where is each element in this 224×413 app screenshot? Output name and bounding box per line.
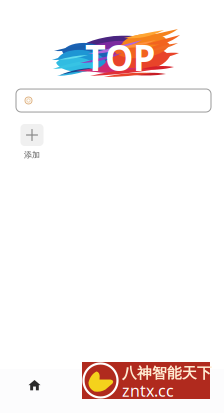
button[interactable]: Home [0, 369, 69, 413]
button[interactable] [16, 89, 211, 112]
staticText: TOP [85, 33, 155, 81]
staticText: 添加 [24, 150, 40, 160]
button[interactable]: 添加 [12, 124, 52, 160]
staticText: zntx.cc [122, 380, 174, 401]
staticText: 八神智能天下 [122, 364, 212, 382]
